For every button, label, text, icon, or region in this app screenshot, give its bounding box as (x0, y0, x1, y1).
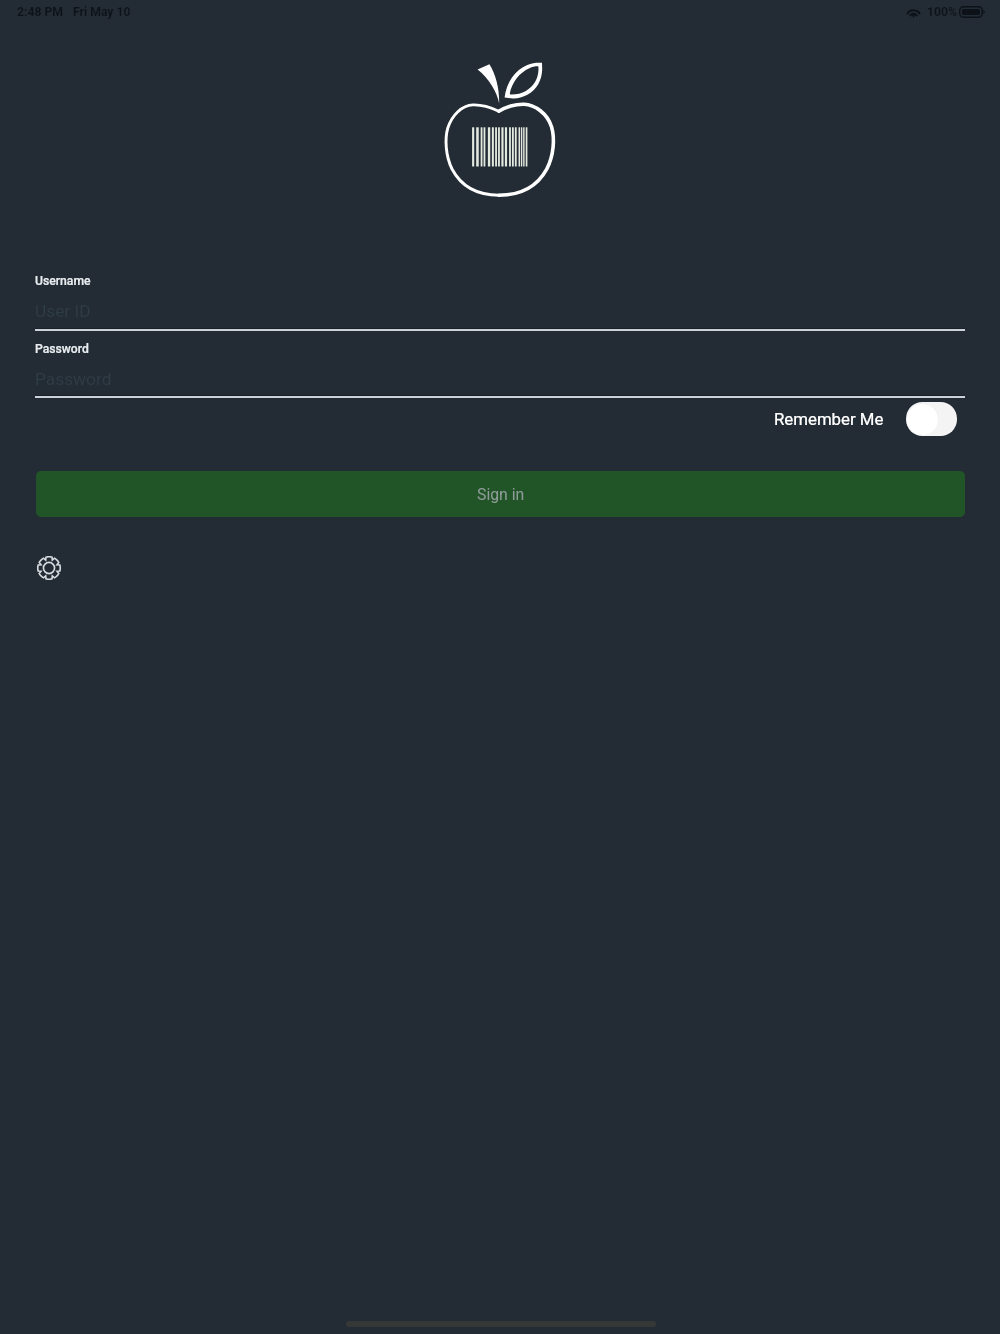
staticText: 2:48 PM (17, 5, 63, 19)
button[interactable]: Sign in (36, 471, 965, 517)
staticText: Username (35, 274, 91, 288)
staticText: Fri May 10 (73, 5, 131, 19)
button[interactable]: Settings (33, 552, 65, 584)
staticText: Password (35, 342, 89, 356)
button[interactable]: Remember Me (774, 400, 957, 438)
staticText: User ID (35, 301, 91, 321)
staticText: Sign in (477, 485, 525, 504)
staticText: Password (35, 369, 112, 389)
staticText: Remember Me (774, 409, 884, 429)
staticText: 100% (927, 5, 957, 19)
